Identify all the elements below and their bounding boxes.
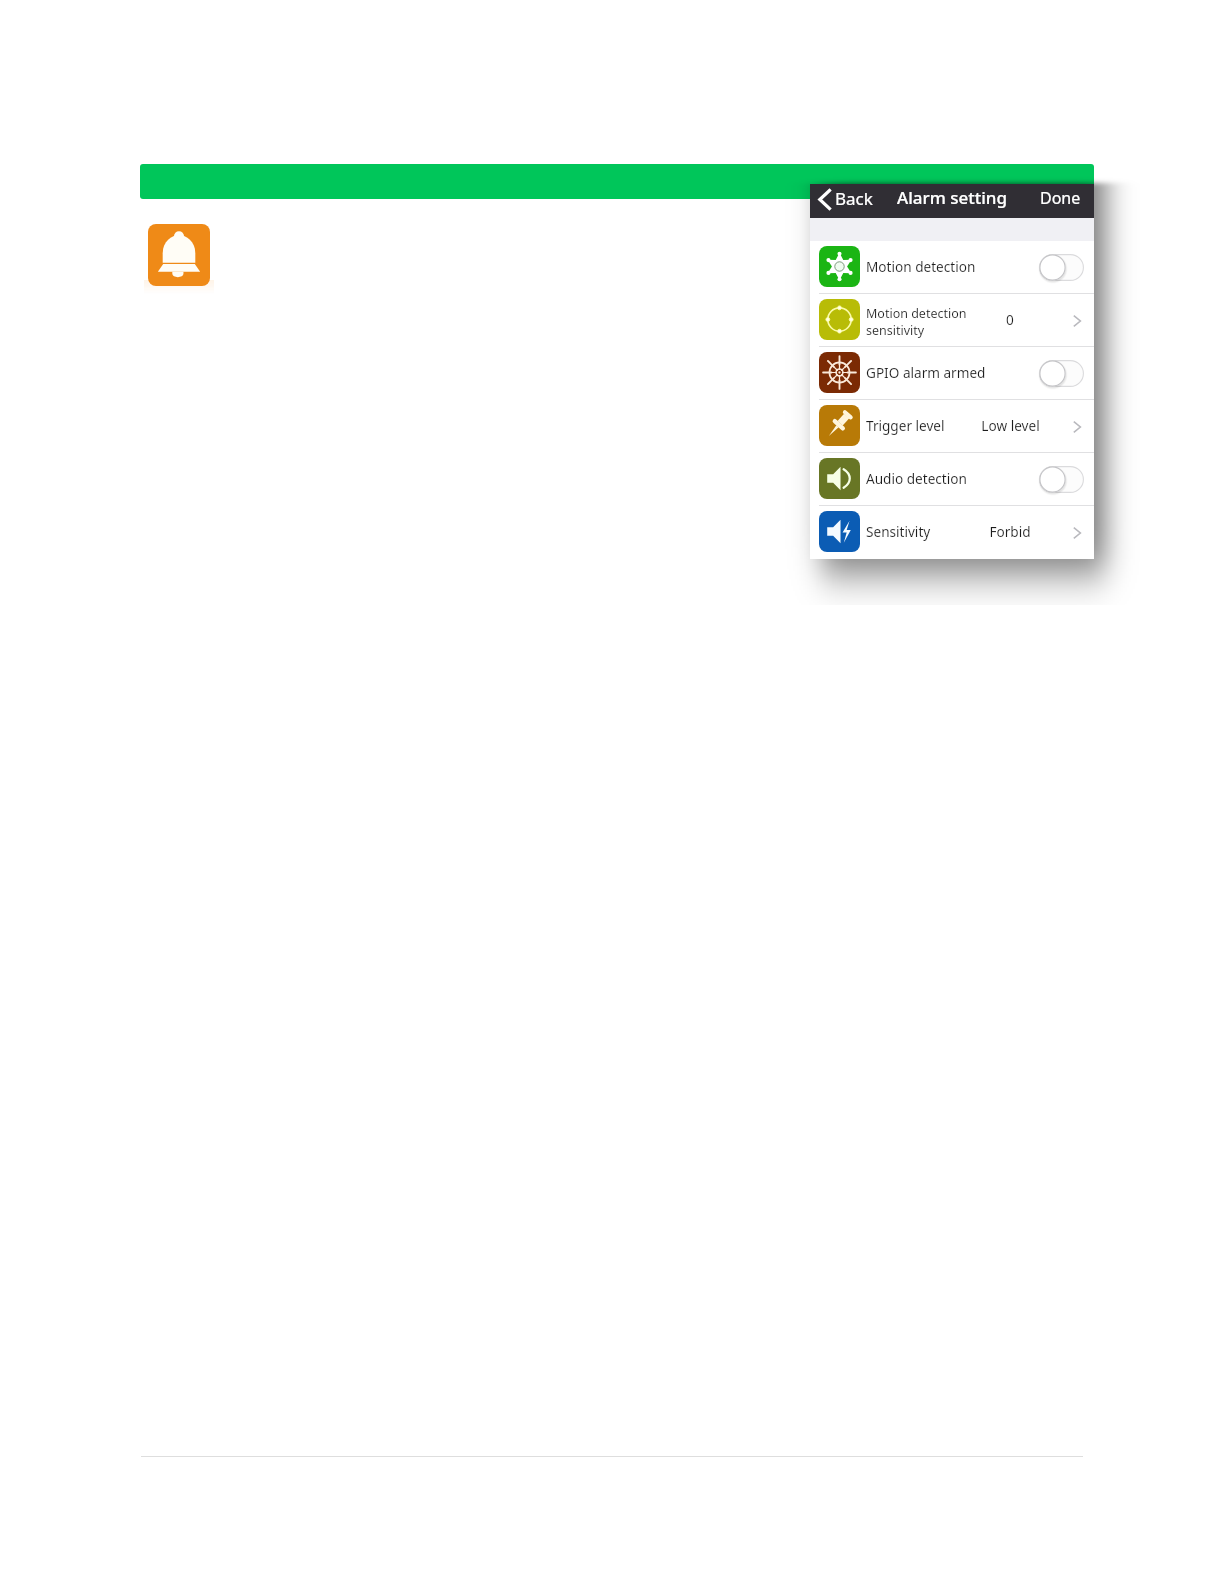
staticText: Forbid bbox=[989, 522, 1031, 541]
button[interactable]: GPIO alarm armed bbox=[810, 347, 1094, 400]
staticText: sensitivity bbox=[866, 322, 925, 339]
button[interactable]: Back bbox=[810, 184, 881, 218]
button[interactable]: Alarm bbox=[148, 224, 210, 286]
button[interactable]: Toggle bbox=[1039, 360, 1084, 387]
staticText: Low level bbox=[981, 416, 1040, 435]
staticText: Done bbox=[1040, 187, 1081, 209]
button[interactable]: Done bbox=[1025, 184, 1094, 218]
button[interactable]: Toggle bbox=[1039, 254, 1084, 281]
button[interactable]: Toggle bbox=[1039, 466, 1084, 493]
button[interactable]: Audio detection bbox=[810, 453, 1094, 506]
staticText: Motion detection bbox=[866, 305, 967, 322]
button[interactable]: Motion detection bbox=[810, 241, 1094, 294]
staticText: Alarm setting bbox=[897, 186, 1007, 209]
staticText: Back bbox=[835, 187, 873, 210]
button[interactable]: Sensitivity bbox=[810, 506, 1094, 559]
other: More bbox=[1073, 315, 1081, 327]
staticText: 0 bbox=[1006, 310, 1014, 329]
staticText: Sensitivity bbox=[866, 522, 931, 541]
staticText: Trigger level bbox=[866, 416, 945, 435]
staticText: Motion detection bbox=[866, 257, 976, 276]
staticText: Audio detection bbox=[866, 469, 967, 488]
button[interactable]: Motion detection bbox=[810, 294, 1094, 347]
staticText: GPIO alarm armed bbox=[866, 363, 986, 382]
other: More bbox=[1073, 527, 1081, 539]
other: More bbox=[1073, 421, 1081, 433]
button[interactable]: Trigger level bbox=[810, 400, 1094, 453]
